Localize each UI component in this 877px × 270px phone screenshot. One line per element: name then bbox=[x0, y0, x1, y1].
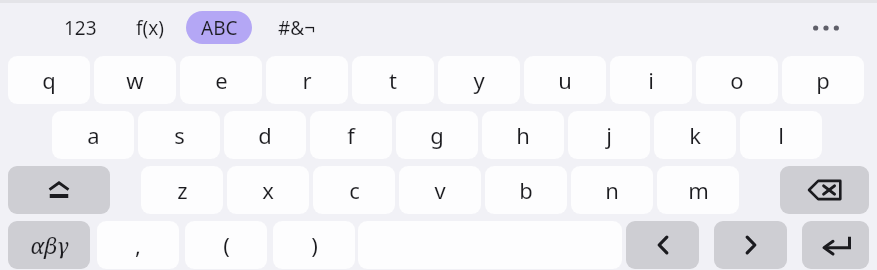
button[interactable]: #&¬ bbox=[266, 13, 328, 43]
button[interactable]: z bbox=[141, 166, 223, 214]
staticText: ABC bbox=[201, 15, 238, 41]
button[interactable]: ABC bbox=[186, 11, 252, 44]
staticText: o bbox=[730, 65, 744, 95]
staticText: f bbox=[347, 120, 355, 150]
staticText: t bbox=[389, 65, 397, 95]
staticText: a bbox=[87, 120, 100, 150]
button[interactable]: Shift bbox=[8, 166, 110, 214]
staticText: u bbox=[558, 65, 572, 95]
button[interactable]: More options bbox=[802, 10, 850, 46]
button[interactable]: y bbox=[438, 56, 520, 104]
staticText: v bbox=[434, 175, 446, 205]
staticText: c bbox=[349, 175, 360, 205]
staticText: q bbox=[42, 65, 56, 95]
staticText: y bbox=[473, 65, 485, 95]
staticText: h bbox=[516, 120, 530, 150]
staticText: b bbox=[519, 175, 533, 205]
button[interactable]: v bbox=[399, 166, 481, 214]
button[interactable]: h bbox=[482, 111, 564, 159]
button[interactable]: f bbox=[310, 111, 392, 159]
staticText: r bbox=[302, 65, 312, 95]
staticText: ( bbox=[223, 230, 230, 260]
button[interactable]: Move cursor left bbox=[626, 221, 699, 269]
staticText: x bbox=[262, 175, 274, 205]
button[interactable]: r bbox=[266, 56, 348, 104]
button[interactable]: j bbox=[568, 111, 650, 159]
staticText: d bbox=[258, 120, 272, 150]
staticText: k bbox=[689, 120, 701, 150]
button[interactable]: , bbox=[97, 221, 179, 269]
button[interactable]: f(x) bbox=[122, 13, 178, 43]
staticText: , bbox=[135, 230, 141, 260]
button[interactable]: a bbox=[52, 111, 134, 159]
button[interactable]: ) bbox=[273, 221, 355, 269]
button[interactable]: m bbox=[657, 166, 739, 214]
button[interactable]: g bbox=[396, 111, 478, 159]
button[interactable]: u bbox=[524, 56, 606, 104]
button[interactable]: t bbox=[352, 56, 434, 104]
button[interactable]: e bbox=[180, 56, 262, 104]
button[interactable]: n bbox=[571, 166, 653, 214]
button[interactable]: 123 bbox=[52, 13, 108, 43]
staticText: p bbox=[816, 65, 830, 95]
button[interactable]: Greek letters bbox=[8, 221, 90, 269]
staticText: g bbox=[430, 120, 444, 150]
button[interactable]: i bbox=[610, 56, 692, 104]
staticText: w bbox=[126, 65, 144, 95]
button[interactable]: p bbox=[782, 56, 864, 104]
staticText: #&¬ bbox=[278, 15, 316, 41]
staticText: 123 bbox=[64, 15, 97, 41]
staticText: i bbox=[648, 65, 654, 95]
button[interactable]: o bbox=[696, 56, 778, 104]
button[interactable]: s bbox=[138, 111, 220, 159]
staticText: j bbox=[606, 120, 612, 150]
button[interactable]: b bbox=[485, 166, 567, 214]
button[interactable]: x bbox=[227, 166, 309, 214]
button[interactable]: w bbox=[94, 56, 176, 104]
button[interactable]: k bbox=[654, 111, 736, 159]
button[interactable]: ( bbox=[185, 221, 267, 269]
button[interactable]: c bbox=[313, 166, 395, 214]
staticText: s bbox=[174, 120, 185, 150]
button[interactable]: l bbox=[740, 111, 822, 159]
button[interactable]: Backspace bbox=[780, 166, 869, 214]
staticText: z bbox=[177, 175, 188, 205]
staticText: e bbox=[215, 65, 228, 95]
staticText: l bbox=[778, 120, 784, 150]
staticText: ) bbox=[311, 230, 318, 260]
button[interactable]: Enter bbox=[802, 221, 869, 269]
button[interactable]: Move cursor right bbox=[714, 221, 787, 269]
staticText: αβγ bbox=[30, 230, 69, 260]
staticText: n bbox=[605, 175, 619, 205]
button[interactable]: q bbox=[8, 56, 90, 104]
staticText: f(x) bbox=[136, 15, 164, 41]
button[interactable]: d bbox=[224, 111, 306, 159]
staticText: m bbox=[688, 175, 709, 205]
